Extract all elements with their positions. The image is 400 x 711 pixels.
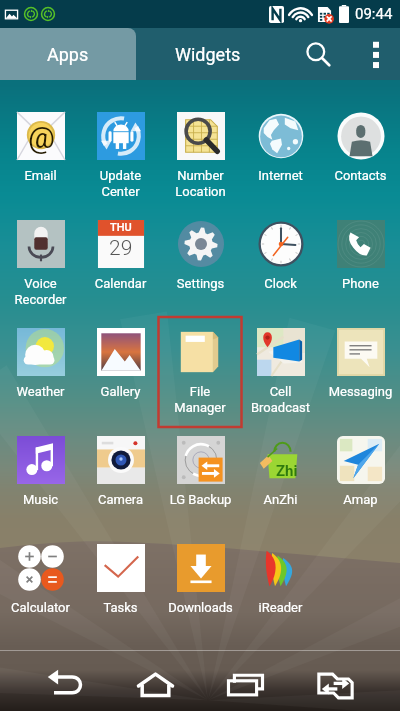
staticText: Calculator bbox=[1, 600, 80, 615]
button[interactable]: Music bbox=[0, 436, 80, 544]
button[interactable]: Dual window bbox=[295, 651, 375, 711]
button[interactable]: Calculator bbox=[0, 544, 80, 652]
staticText: Camera bbox=[81, 492, 160, 507]
button[interactable]: More options bbox=[352, 28, 400, 80]
button[interactable]: LG Backup bbox=[160, 436, 240, 544]
staticText: Internet bbox=[241, 168, 320, 183]
staticText: Downloads bbox=[161, 600, 240, 615]
staticText: 09:44 bbox=[355, 5, 393, 23]
button[interactable]: Cell Broadcast bbox=[240, 328, 320, 436]
button[interactable]: Internet bbox=[240, 112, 320, 220]
button[interactable]: Gallery bbox=[80, 328, 160, 436]
button[interactable]: Voice Recorder bbox=[0, 220, 80, 328]
staticText: Amap bbox=[321, 492, 400, 507]
staticText: Settings bbox=[161, 276, 240, 291]
staticText: AnZhi bbox=[241, 492, 320, 507]
button[interactable]: Settings bbox=[160, 220, 240, 328]
staticText: Widgets bbox=[175, 44, 241, 65]
button[interactable]: Amap bbox=[320, 436, 400, 544]
staticText: Weather bbox=[1, 384, 80, 399]
staticText: Update Center bbox=[81, 168, 160, 199]
button[interactable]: Clock bbox=[240, 220, 320, 328]
button[interactable]: Phone bbox=[320, 220, 400, 328]
button[interactable]: Number Location bbox=[160, 112, 240, 220]
button[interactable]: THU bbox=[80, 220, 160, 328]
button[interactable]: Tasks bbox=[80, 544, 160, 652]
button[interactable]: File Manager bbox=[160, 328, 240, 436]
staticText: Contacts bbox=[321, 168, 400, 183]
staticText: 29 bbox=[109, 236, 133, 261]
button[interactable]: Camera bbox=[80, 436, 160, 544]
button[interactable]: Contacts bbox=[320, 112, 400, 220]
staticText: iReader bbox=[241, 600, 320, 615]
staticText: Email bbox=[1, 168, 80, 183]
button[interactable]: Back bbox=[25, 651, 105, 711]
staticText: Calendar bbox=[81, 276, 160, 291]
staticText: @ bbox=[28, 120, 55, 155]
button[interactable]: Home bbox=[115, 651, 195, 711]
staticText: Phone bbox=[321, 276, 400, 291]
staticText: Zhi bbox=[276, 462, 298, 480]
button[interactable]: Weather bbox=[0, 328, 80, 436]
staticText: Cell Broadcast bbox=[241, 384, 320, 415]
staticText: Music bbox=[1, 492, 80, 507]
staticText: Number Location bbox=[161, 168, 240, 199]
staticText: Tasks bbox=[81, 600, 160, 615]
staticText: Gallery bbox=[81, 384, 160, 399]
button[interactable]: Downloads bbox=[160, 544, 240, 652]
button[interactable]: Search bbox=[292, 28, 344, 80]
button[interactable]: Update Center bbox=[80, 112, 160, 220]
button[interactable]: @ bbox=[0, 112, 80, 220]
staticText: Voice Recorder bbox=[1, 276, 80, 307]
button[interactable]: Widgets bbox=[136, 28, 280, 80]
staticText: Messaging bbox=[321, 384, 400, 399]
button[interactable]: iReader bbox=[240, 544, 320, 652]
staticText: Apps bbox=[47, 44, 89, 65]
staticText: LG Backup bbox=[161, 492, 240, 507]
button[interactable]: Apps bbox=[0, 28, 136, 80]
staticText: Clock bbox=[241, 276, 320, 291]
staticText: File Manager bbox=[166, 384, 234, 415]
button[interactable]: Zhi bbox=[240, 436, 320, 544]
staticText: THU bbox=[110, 221, 132, 234]
button[interactable]: Recent apps bbox=[205, 651, 285, 711]
button[interactable]: Messaging bbox=[320, 328, 400, 436]
